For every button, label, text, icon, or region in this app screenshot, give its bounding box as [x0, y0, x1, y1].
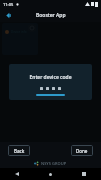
button[interactable]: Done — [71, 145, 93, 156]
button[interactable]: Recent apps — [67, 168, 101, 180]
staticText: Booster App — [36, 12, 66, 19]
button[interactable]: Back — [8, 145, 30, 156]
button[interactable]: Home — [33, 168, 67, 180]
button[interactable]: Back — [0, 168, 33, 180]
button[interactable]: Back — [3, 10, 14, 21]
staticText: Done — [76, 148, 88, 154]
staticText: Enter device code — [29, 74, 72, 81]
staticText: 11:05 — [3, 2, 14, 7]
staticText: Back — [14, 148, 25, 154]
button[interactable]: Device info — [2, 23, 38, 55]
staticText: NSYS GROUP — [41, 161, 67, 166]
